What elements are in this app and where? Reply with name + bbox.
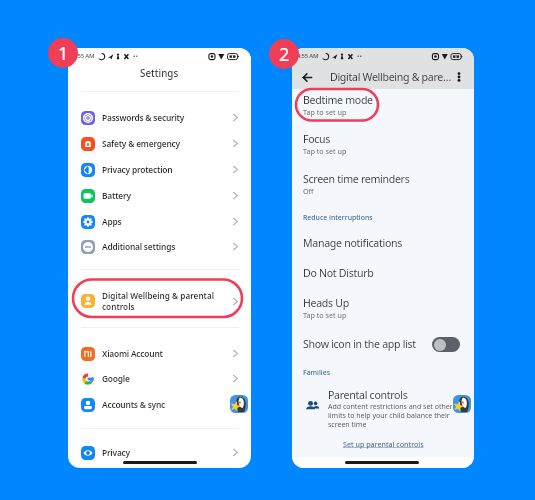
button[interactable]: Bedtime mode bbox=[292, 93, 474, 117]
button[interactable]: Apps bbox=[68, 209, 251, 234]
button[interactable]: Do Not Disturb bbox=[292, 266, 474, 280]
staticText: 1 bbox=[58, 41, 69, 66]
button[interactable]: Privacy bbox=[68, 440, 251, 465]
staticText: Settings bbox=[140, 67, 179, 80]
staticText: Privacy bbox=[102, 447, 130, 458]
button[interactable]: Passwords & security bbox=[68, 105, 251, 130]
staticText: Do Not Disturb bbox=[303, 266, 374, 280]
button[interactable]: Parental controls bbox=[292, 388, 474, 429]
button[interactable]: Google bbox=[68, 366, 251, 391]
staticText: 4:55 AM bbox=[73, 52, 95, 60]
button[interactable]: Heads Up bbox=[292, 296, 474, 320]
staticText: 2 bbox=[279, 42, 290, 67]
staticText: Accounts & sync bbox=[102, 399, 166, 410]
button[interactable]: Show icon in the app list toggle bbox=[432, 337, 460, 352]
button[interactable]: Manage notifications bbox=[292, 236, 474, 250]
staticText: Manage notifications bbox=[303, 236, 403, 250]
staticText: Tap to set up bbox=[303, 146, 347, 156]
button[interactable]: Privacy protection bbox=[68, 157, 251, 182]
staticText: 4:55 AM bbox=[297, 52, 319, 60]
button[interactable]: Screen time reminders bbox=[292, 172, 474, 196]
staticText: Tap to set up bbox=[303, 310, 347, 320]
staticText: Digital Wellbeing & pare… bbox=[330, 70, 452, 84]
button[interactable]: Focus bbox=[292, 132, 474, 156]
staticText: Xiaomi Account bbox=[102, 348, 163, 359]
staticText: Parental controls bbox=[328, 388, 408, 402]
button[interactable]: Safety & emergency bbox=[68, 131, 251, 156]
button[interactable]: Accounts & sync bbox=[68, 392, 251, 417]
staticText: Heads Up bbox=[303, 296, 349, 310]
staticText: Privacy protection bbox=[102, 164, 173, 175]
staticText: Reduce interruptions bbox=[303, 213, 373, 222]
staticText: Battery bbox=[102, 190, 131, 201]
staticText: Add content restrictions and set other l… bbox=[328, 402, 454, 429]
staticText: controls bbox=[102, 301, 135, 312]
button[interactable]: Back bbox=[299, 69, 315, 85]
staticText: Focus bbox=[303, 132, 331, 146]
button[interactable]: Battery bbox=[68, 183, 251, 208]
staticText: Additional settings bbox=[102, 241, 176, 252]
button[interactable]: Digital Wellbeing & parental bbox=[68, 285, 251, 317]
staticText: Safety & emergency bbox=[102, 138, 180, 149]
staticText: Passwords & security bbox=[102, 112, 185, 123]
staticText: Apps bbox=[102, 216, 122, 227]
staticText: Google bbox=[102, 373, 130, 384]
staticText: Screen time reminders bbox=[303, 172, 410, 186]
staticText: Bedtime mode bbox=[303, 93, 373, 107]
button[interactable]: Set up parental controls bbox=[292, 437, 474, 451]
button[interactable]: Show icon in the app list bbox=[292, 335, 474, 353]
button[interactable]: Xiaomi Account bbox=[68, 341, 251, 366]
staticText: Families bbox=[303, 368, 330, 377]
staticText: Digital Wellbeing & parental bbox=[102, 290, 215, 301]
button[interactable]: More options bbox=[452, 70, 466, 84]
staticText: Tap to set up bbox=[303, 107, 347, 117]
staticText: Set up parental controls bbox=[343, 439, 424, 449]
staticText: Off bbox=[303, 186, 314, 196]
staticText: Show icon in the app list bbox=[303, 337, 416, 351]
button[interactable]: Additional settings bbox=[68, 234, 251, 259]
